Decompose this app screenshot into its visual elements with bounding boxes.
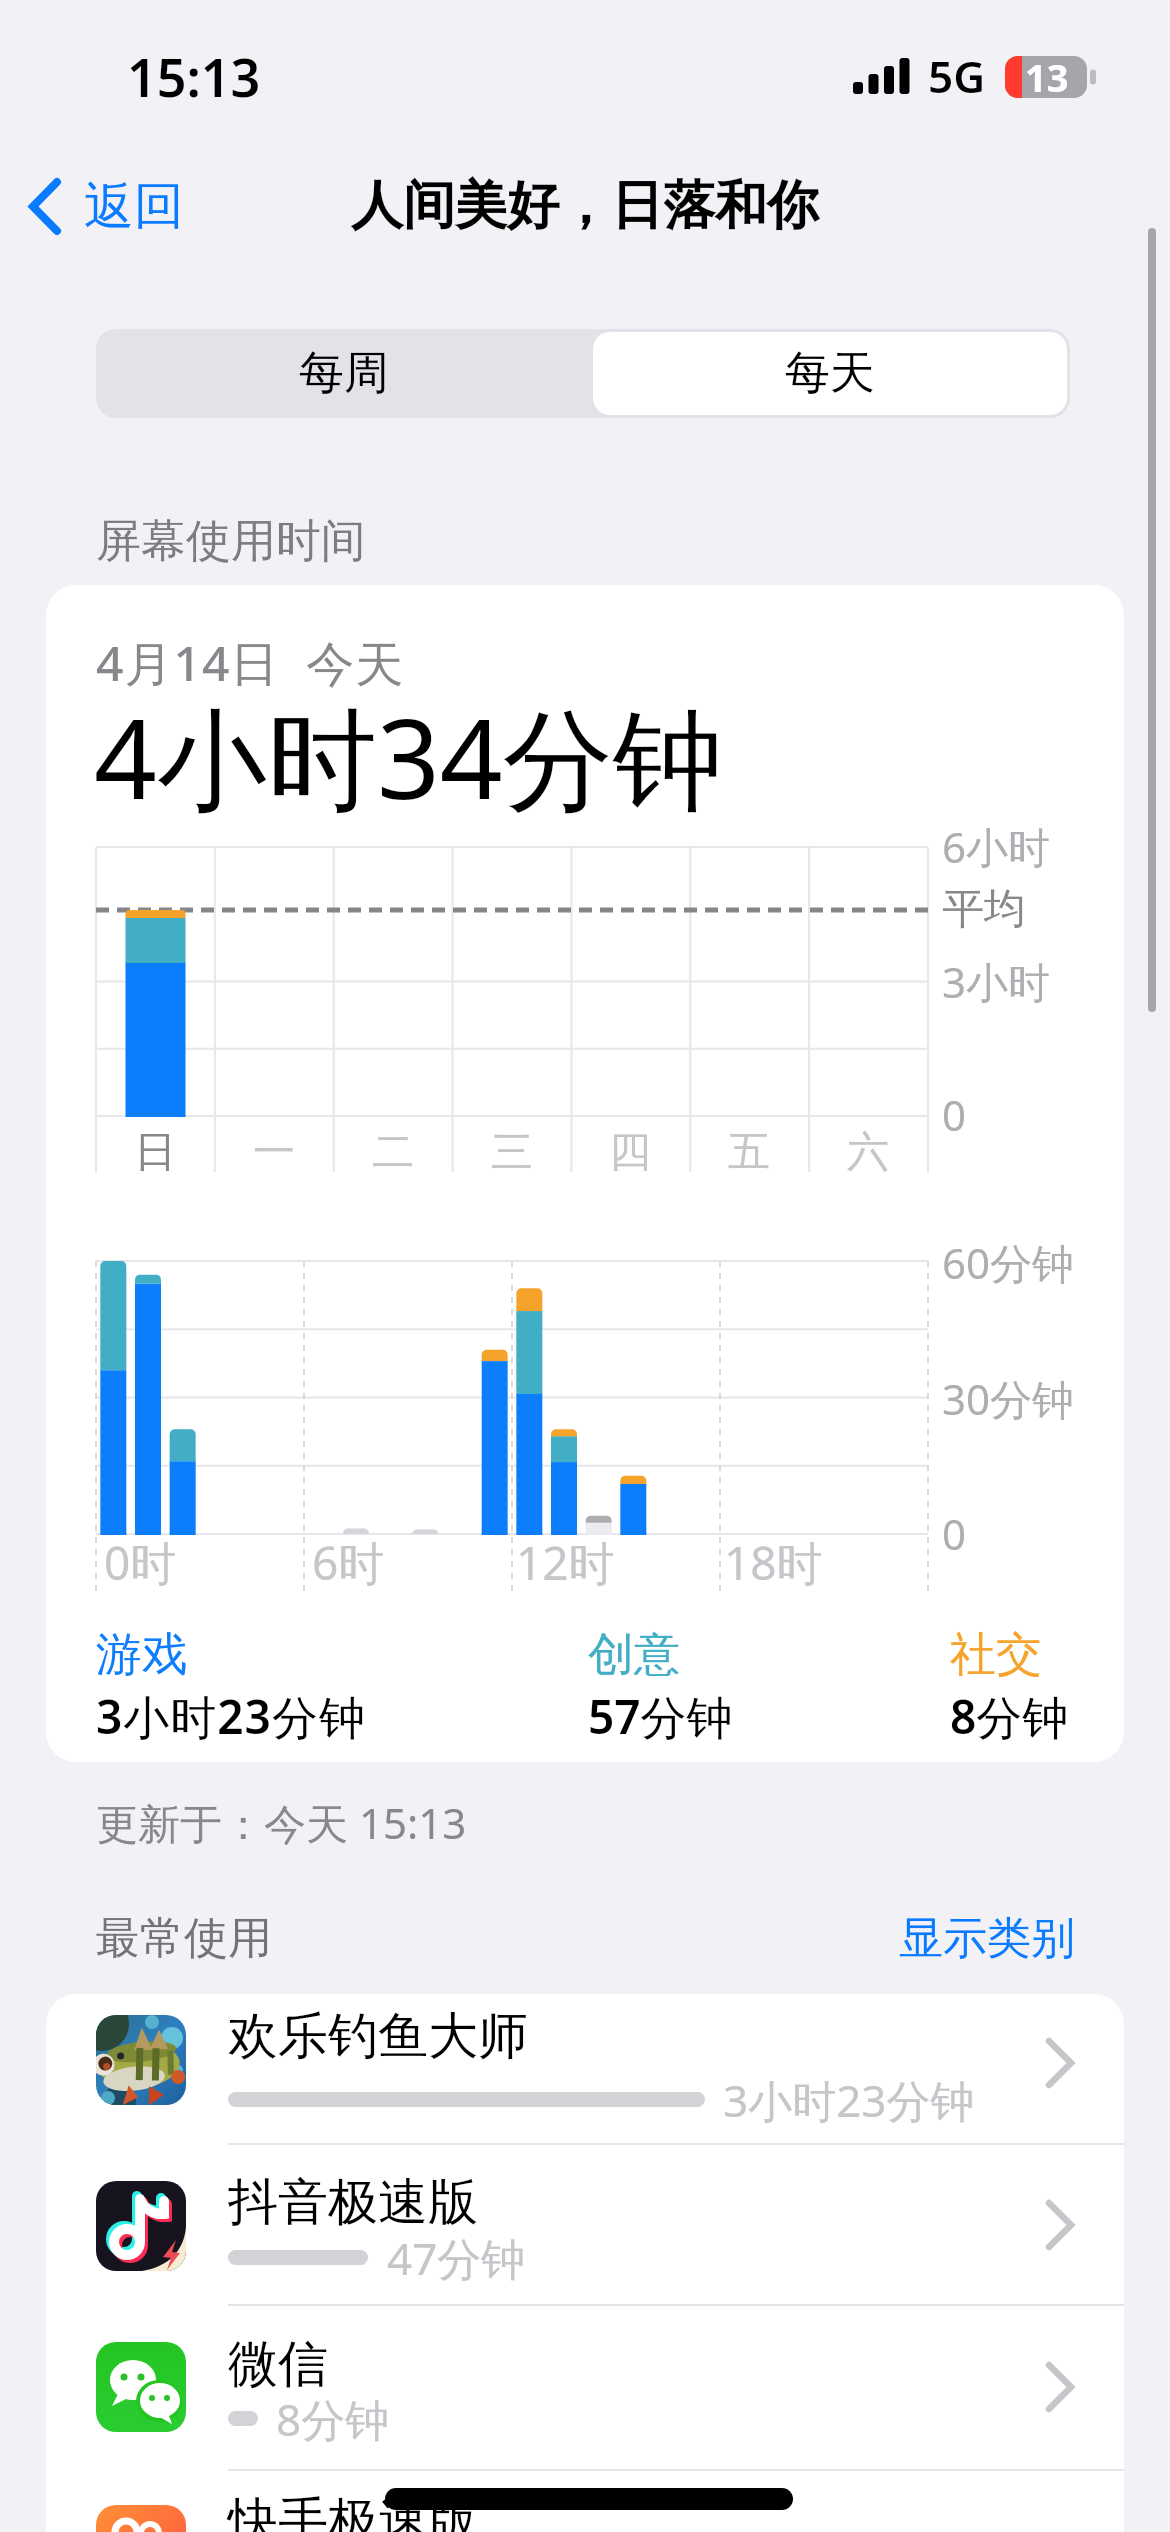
button[interactable]: 显示类别 xyxy=(885,1893,1075,1983)
staticText: 47分钟 xyxy=(387,2228,526,2288)
staticText: 3小时23分钟 xyxy=(723,2070,975,2130)
staticText: 四 xyxy=(609,1126,651,1179)
button[interactable] xyxy=(46,2472,1124,2532)
button[interactable] xyxy=(46,1994,1124,2144)
staticText: 六 xyxy=(847,1126,889,1179)
staticText: 6小时 xyxy=(942,818,1051,875)
staticText: 人间美好，日落和你 xyxy=(351,173,819,239)
staticText: 0 xyxy=(942,1086,967,1143)
staticText: 57分钟 xyxy=(588,1685,733,1748)
button[interactable] xyxy=(593,332,1067,415)
staticText: 社交 xyxy=(950,1626,1042,1684)
staticText: 平均 xyxy=(942,883,1026,936)
staticText: 12时 xyxy=(516,1531,615,1594)
staticText: 4小时34分钟 xyxy=(94,681,723,831)
staticText: 抖音极速版 xyxy=(228,2171,478,2234)
button[interactable] xyxy=(96,329,583,418)
staticText: 18时 xyxy=(724,1531,823,1594)
staticText: 8分钟 xyxy=(950,1685,1069,1748)
staticText: 快手极速版 xyxy=(228,2490,478,2532)
staticText: 返回 xyxy=(84,175,184,238)
staticText: 微信 xyxy=(228,2333,328,2396)
staticText: 15:13 xyxy=(127,41,261,112)
staticText: 5G xyxy=(928,46,986,106)
button[interactable] xyxy=(46,2307,1124,2470)
staticText: 二 xyxy=(372,1126,414,1179)
button[interactable]: 返回 xyxy=(84,156,184,256)
staticText: 创意 xyxy=(588,1626,680,1684)
staticText: 0 xyxy=(942,1505,967,1562)
staticText: 欢乐钓鱼大师 xyxy=(228,2005,528,2068)
button[interactable] xyxy=(46,2146,1124,2305)
staticText: 13 xyxy=(1025,51,1069,103)
staticText: 每周 xyxy=(299,345,389,402)
staticText: 3小时 xyxy=(942,953,1051,1010)
staticText: 30分钟 xyxy=(942,1370,1075,1427)
staticText: 60分钟 xyxy=(942,1234,1075,1291)
staticText: 8分钟 xyxy=(276,2389,390,2449)
staticText: 五 xyxy=(728,1126,770,1179)
staticText: 屏幕使用时间 xyxy=(96,513,366,570)
staticText: 日 xyxy=(134,1126,176,1179)
staticText: 显示类别 xyxy=(899,1911,1075,1966)
staticText: 更新于：今天 15:13 xyxy=(96,1794,467,1851)
staticText: 一 xyxy=(253,1126,295,1179)
staticText: 三 xyxy=(491,1126,533,1179)
staticText: 4月14日 今天 xyxy=(96,630,405,696)
staticText: 0时 xyxy=(104,1531,177,1594)
staticText: 3小时23分钟 xyxy=(96,1685,366,1748)
staticText: 最常使用 xyxy=(96,1911,272,1966)
staticText: 游戏 xyxy=(96,1626,188,1684)
staticText: 每天 xyxy=(785,345,875,402)
staticText: 6时 xyxy=(312,1531,385,1594)
